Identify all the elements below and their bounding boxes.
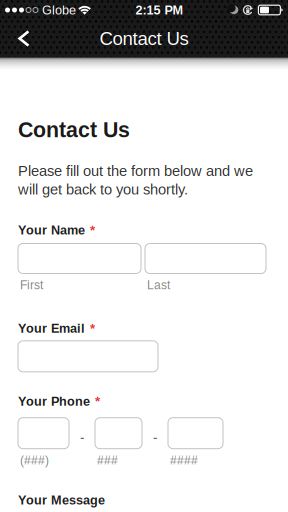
button[interactable]: Last [145,243,266,273]
staticText: Please fill out the form below and we [18,163,253,179]
staticText: Contact Us [18,118,130,142]
staticText: * [90,223,95,237]
staticText: #### [170,454,198,467]
staticText: Your Phone [18,394,90,408]
staticText: Your Email [18,321,85,335]
staticText: Contact Us [99,28,188,49]
staticText: Your Name [18,223,85,237]
staticText: Globe [42,3,76,17]
staticText: will get back to you shortly. [18,181,188,198]
button[interactable]: (###) [18,418,69,449]
button[interactable]: First [18,243,141,273]
staticText: * [90,321,95,336]
staticText: - [80,430,84,445]
button[interactable]: #### [168,418,223,449]
button[interactable]: Your Email [18,341,158,372]
staticText: Last [147,278,170,292]
button[interactable]: Back [0,20,44,57]
staticText: ### [97,454,118,467]
staticText: Your Message [18,493,105,507]
staticText: - [153,430,157,445]
staticText: * [95,394,100,409]
staticText: 2:15 PM [135,3,183,17]
staticText: (###) [20,454,49,467]
staticText: First [20,278,43,292]
button[interactable]: ### [95,418,142,449]
